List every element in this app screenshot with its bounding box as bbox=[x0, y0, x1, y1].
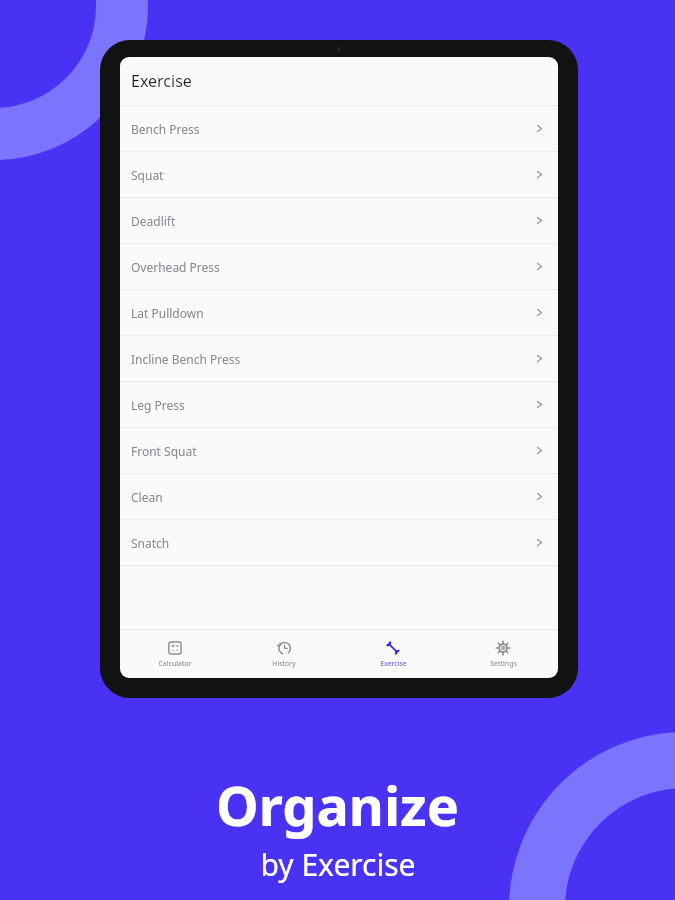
staticText: Bench Press bbox=[131, 121, 200, 137]
button[interactable]: History bbox=[229, 630, 338, 678]
staticText: Calculator bbox=[158, 659, 192, 669]
button[interactable]: Front Squat bbox=[120, 428, 558, 474]
staticText: Deadlift bbox=[131, 213, 176, 229]
staticText: Lat Pulldown bbox=[131, 305, 204, 321]
staticText: Settings bbox=[490, 659, 517, 669]
staticText: Exercise bbox=[380, 659, 407, 669]
button[interactable]: Leg Press bbox=[120, 382, 558, 428]
staticText: Leg Press bbox=[131, 397, 185, 413]
staticText: Overhead Press bbox=[131, 259, 220, 275]
button[interactable]: Deadlift bbox=[120, 198, 558, 244]
button[interactable]: Calculator bbox=[120, 630, 229, 678]
staticText: History bbox=[272, 659, 296, 669]
button[interactable]: Overhead Press bbox=[120, 244, 558, 290]
staticText: Squat bbox=[131, 167, 164, 183]
staticText: Snatch bbox=[131, 535, 170, 551]
staticText: Incline Bench Press bbox=[131, 351, 241, 367]
button[interactable]: Clean bbox=[120, 474, 558, 520]
staticText: Exercise bbox=[131, 70, 192, 92]
button[interactable]: Bench Press bbox=[120, 106, 558, 152]
button[interactable]: Exercise bbox=[338, 630, 448, 678]
button[interactable]: Squat bbox=[120, 152, 558, 198]
staticText: Front Squat bbox=[131, 443, 197, 459]
staticText: Clean bbox=[131, 489, 163, 505]
button[interactable]: Settings bbox=[448, 630, 558, 678]
staticText: by Exercise bbox=[260, 844, 416, 885]
button[interactable]: Lat Pulldown bbox=[120, 290, 558, 336]
button[interactable]: Snatch bbox=[120, 520, 558, 566]
staticText: Organize bbox=[216, 768, 459, 842]
button[interactable]: Incline Bench Press bbox=[120, 336, 558, 382]
